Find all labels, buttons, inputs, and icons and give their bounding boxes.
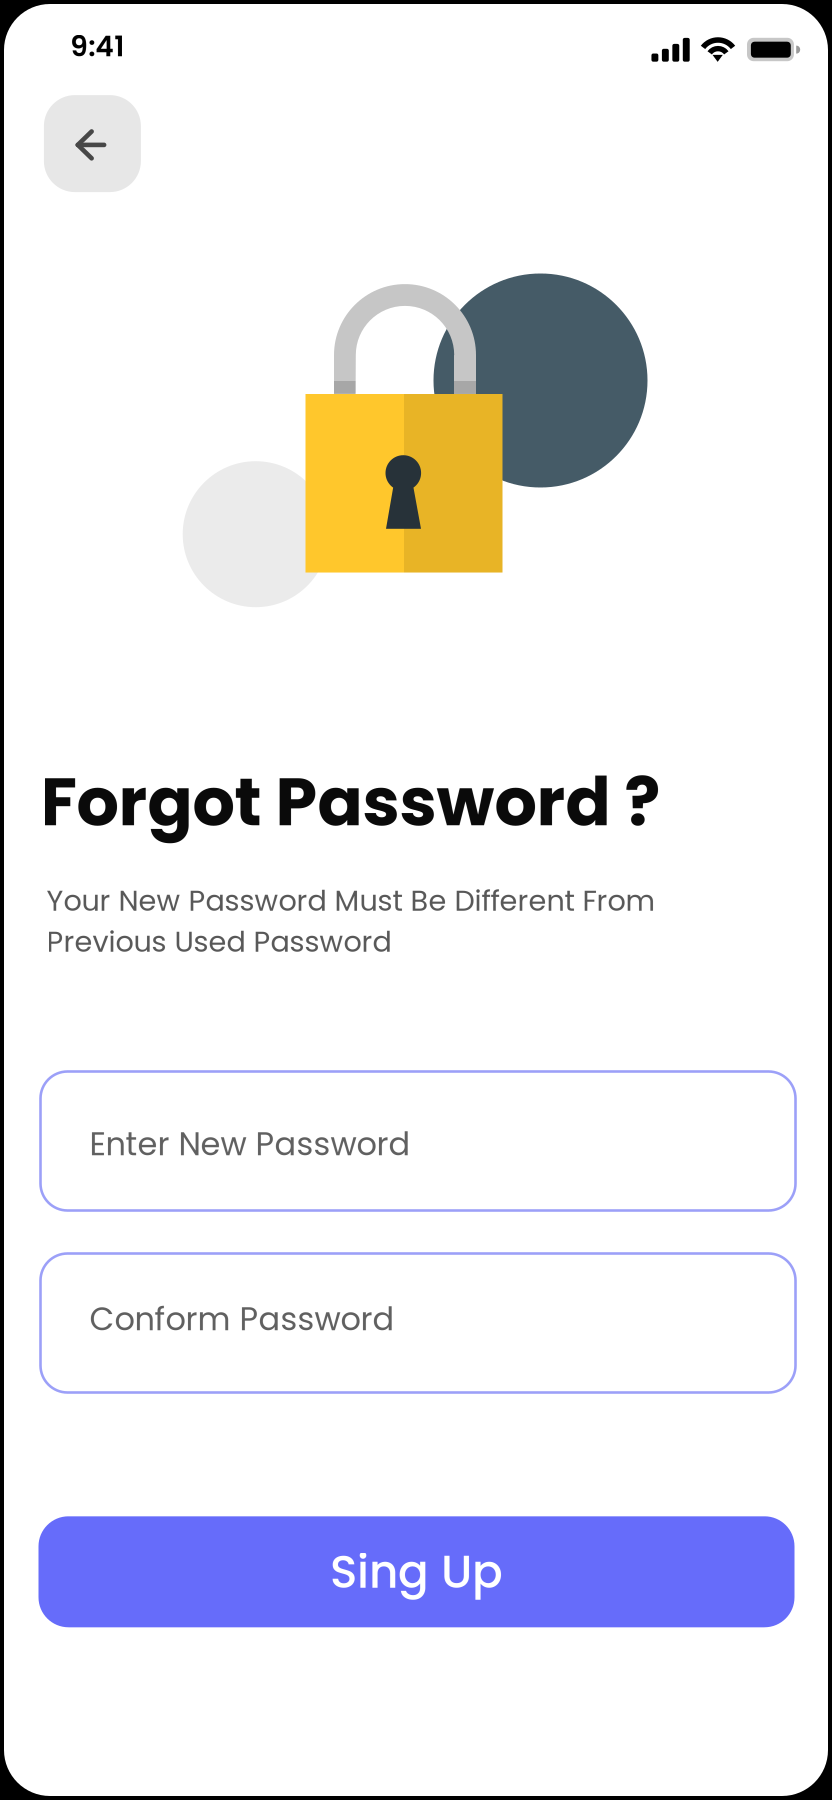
staticText: Conform Password bbox=[89, 1297, 394, 1341]
staticText: Your New Password Must Be Different From bbox=[46, 880, 655, 921]
button[interactable]: Back bbox=[44, 95, 141, 192]
button[interactable]: Enter New Password bbox=[40, 1071, 795, 1210]
staticText: Enter New Password bbox=[89, 1122, 410, 1166]
staticText: Previous Used Password bbox=[46, 922, 391, 962]
staticText: Forgot Password ? bbox=[40, 755, 660, 848]
staticText: Sing Up bbox=[330, 1540, 503, 1604]
button[interactable]: Conform Password bbox=[40, 1253, 795, 1392]
button[interactable]: Sing Up bbox=[38, 1516, 794, 1627]
staticText: 9:41 bbox=[70, 27, 124, 66]
